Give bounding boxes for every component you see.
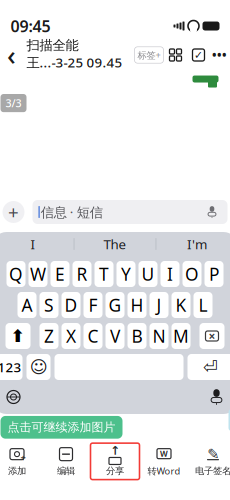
staticText: 编辑 bbox=[57, 465, 75, 477]
staticText: J bbox=[156, 293, 161, 316]
button[interactable]: X bbox=[61, 323, 80, 349]
button[interactable]: C bbox=[83, 323, 102, 349]
staticText: K bbox=[175, 293, 186, 316]
button[interactable]: ✎ bbox=[188, 443, 230, 480]
button[interactable]: Z bbox=[39, 323, 58, 349]
staticText: 标签+ bbox=[137, 49, 160, 61]
button[interactable]: J bbox=[149, 292, 168, 318]
staticText: X bbox=[66, 324, 76, 347]
staticText: M bbox=[173, 324, 189, 347]
staticText: Z bbox=[44, 324, 54, 347]
button[interactable]: 切换键盘 bbox=[2, 386, 24, 408]
staticText: ‹ bbox=[7, 37, 16, 73]
staticText: I bbox=[31, 235, 36, 253]
staticText: 09:45 bbox=[10, 15, 50, 37]
staticText: 123 bbox=[0, 358, 21, 376]
button[interactable]: ↑ bbox=[90, 443, 139, 480]
staticText: L bbox=[198, 293, 207, 316]
button[interactable]: A bbox=[17, 292, 36, 318]
button[interactable]: 语音输入 bbox=[205, 386, 227, 408]
staticText: The bbox=[103, 235, 126, 253]
button[interactable]: + bbox=[0, 443, 41, 480]
staticText: G bbox=[108, 293, 121, 316]
button[interactable]: F bbox=[83, 292, 102, 318]
button[interactable]: W bbox=[28, 261, 47, 287]
button[interactable]: 选择 bbox=[187, 42, 209, 68]
button[interactable]: 添加 bbox=[2, 200, 24, 224]
staticText: T bbox=[99, 262, 109, 285]
staticText: ⬆ bbox=[10, 326, 25, 346]
staticText: × bbox=[208, 328, 215, 344]
button[interactable]: 删除 bbox=[199, 323, 224, 349]
staticText: 电子签名 bbox=[195, 465, 230, 477]
button[interactable]: The bbox=[74, 232, 155, 256]
staticText: C bbox=[87, 324, 98, 347]
button[interactable]: G bbox=[105, 292, 124, 318]
staticText: 转Word bbox=[147, 465, 180, 477]
button[interactable]: M bbox=[171, 323, 190, 349]
button[interactable]: I bbox=[160, 261, 179, 287]
staticText: H bbox=[130, 293, 143, 316]
button[interactable]: I'm bbox=[156, 232, 230, 256]
staticText: ↑ bbox=[110, 444, 120, 457]
staticText: R bbox=[76, 262, 87, 285]
staticText: + bbox=[8, 200, 19, 224]
staticText: ✓ bbox=[194, 49, 203, 61]
staticText: O bbox=[185, 262, 199, 285]
button[interactable]: U bbox=[138, 261, 157, 287]
button[interactable]: W bbox=[139, 443, 188, 480]
staticText: B bbox=[131, 324, 142, 347]
staticText: 点击可继续添加图片 bbox=[7, 420, 115, 435]
button[interactable]: K bbox=[171, 292, 190, 318]
button[interactable]: E bbox=[50, 261, 69, 287]
button[interactable]: D bbox=[61, 292, 80, 318]
staticText: N bbox=[152, 324, 165, 347]
staticText: I bbox=[167, 262, 173, 285]
button[interactable]: 表情 bbox=[26, 354, 50, 380]
button[interactable]: 编辑 bbox=[41, 443, 90, 480]
staticText: I'm bbox=[187, 235, 207, 253]
button[interactable]: 更多 bbox=[209, 42, 229, 68]
staticText: W bbox=[160, 448, 168, 459]
staticText: E bbox=[55, 262, 65, 285]
button[interactable]: Y bbox=[116, 261, 135, 287]
button[interactable]: L bbox=[193, 292, 212, 318]
button[interactable]: T bbox=[94, 261, 113, 287]
button[interactable]: 返回 bbox=[0, 42, 22, 68]
staticText: Y bbox=[121, 262, 131, 285]
button[interactable]: V bbox=[105, 323, 124, 349]
staticText: D bbox=[64, 293, 77, 316]
staticText: W bbox=[30, 262, 46, 285]
button[interactable]: B bbox=[127, 323, 146, 349]
button[interactable]: 标签+ bbox=[134, 47, 163, 63]
staticText: 信息 · 短信 bbox=[41, 203, 103, 221]
staticText: 扫描全能王...-3-25 09.45 bbox=[26, 37, 122, 71]
button[interactable]: O bbox=[182, 261, 201, 287]
staticText: ☺ bbox=[29, 357, 47, 377]
button[interactable]: Q bbox=[6, 261, 25, 287]
button[interactable]: S bbox=[39, 292, 58, 318]
staticText: U bbox=[141, 262, 154, 285]
staticText: S bbox=[44, 293, 54, 316]
button[interactable]: P bbox=[204, 261, 223, 287]
button[interactable]: 123 bbox=[0, 354, 22, 380]
staticText: 添加 bbox=[8, 465, 26, 477]
staticText: 分享 bbox=[106, 465, 124, 477]
button[interactable]: 扫描全能王...-3-25 09.45 bbox=[22, 37, 126, 73]
button[interactable]: N bbox=[149, 323, 168, 349]
staticText: 3/3 bbox=[5, 96, 21, 110]
staticText: P bbox=[209, 262, 219, 285]
button[interactable]: H bbox=[127, 292, 146, 318]
staticText: V bbox=[110, 324, 120, 347]
staticText: ✎ bbox=[207, 446, 219, 462]
button[interactable]: 空格 bbox=[54, 354, 183, 380]
button[interactable]: I bbox=[0, 232, 74, 256]
button[interactable]: 换行 bbox=[187, 354, 230, 380]
button[interactable]: 信息 · 短信 bbox=[32, 200, 227, 224]
button[interactable]: R bbox=[72, 261, 91, 287]
staticText: + bbox=[20, 451, 25, 464]
staticText: Q bbox=[9, 262, 23, 285]
staticText: F bbox=[88, 293, 97, 316]
button[interactable]: Shift bbox=[5, 323, 30, 349]
button[interactable]: 网格视图 bbox=[163, 42, 187, 68]
